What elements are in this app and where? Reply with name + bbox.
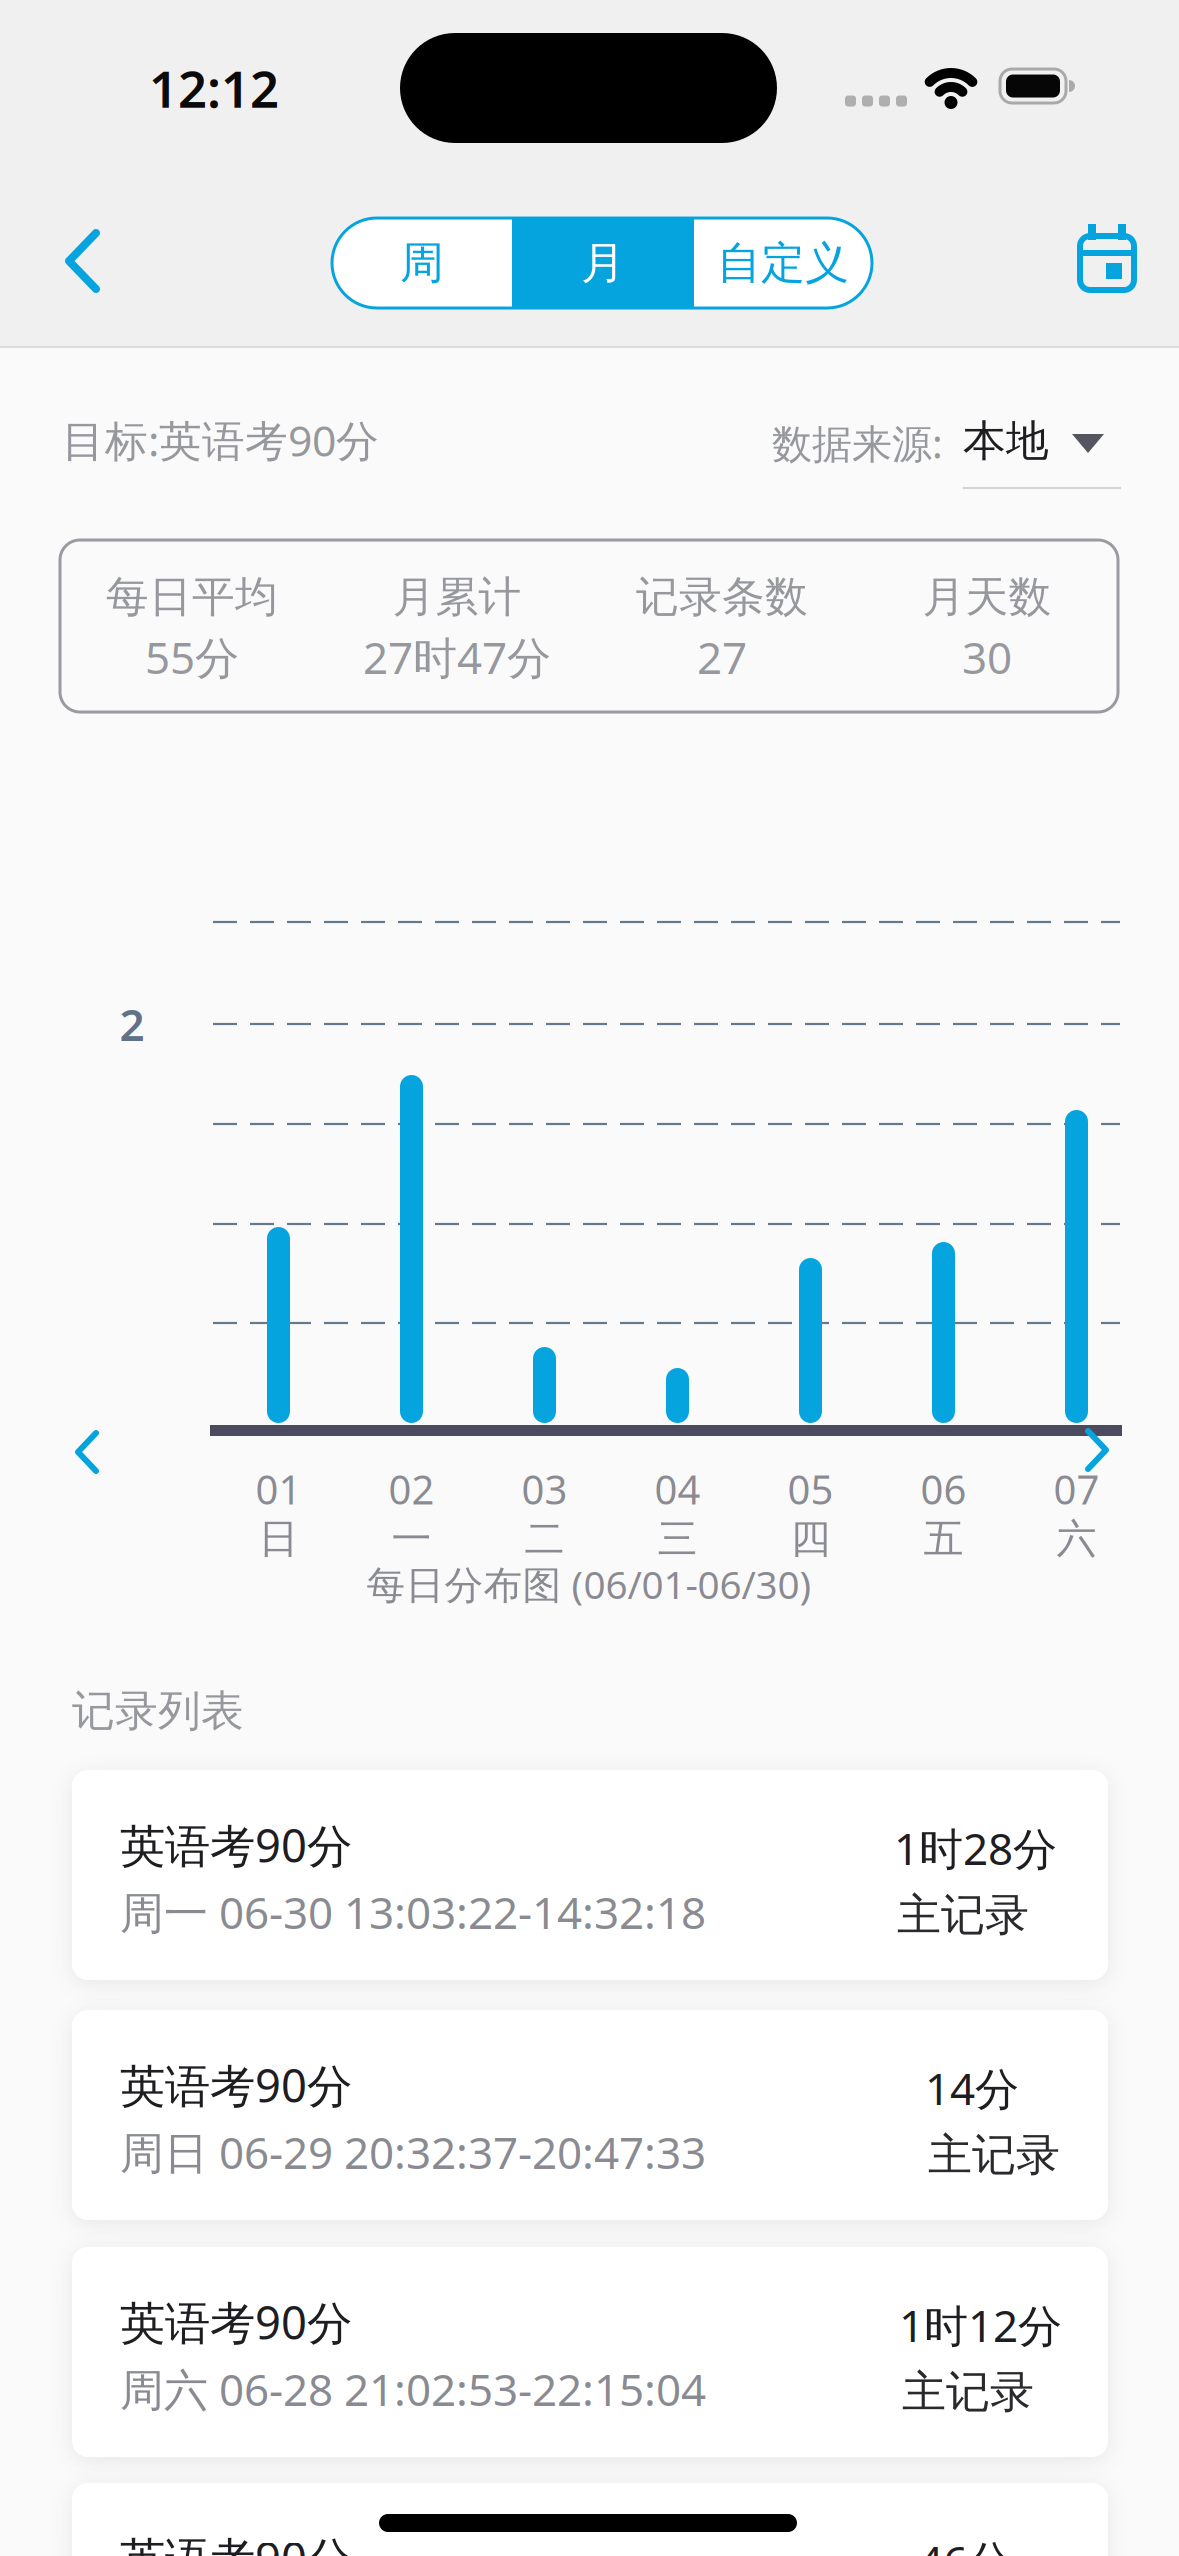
staticText: 二 <box>524 1514 564 1563</box>
staticText: 一 <box>391 1514 431 1563</box>
staticText: 主记录 <box>902 2365 1034 2419</box>
staticText: 1时28分 <box>894 1819 1057 1877</box>
staticText: 27 <box>697 628 747 686</box>
staticText: 五 <box>923 1514 963 1563</box>
staticText: 主记录 <box>897 1888 1029 1942</box>
button[interactable]: 英语考90分 <box>72 1770 1108 1980</box>
staticText: 06 <box>920 1462 966 1515</box>
button[interactable]: 数据来源: <box>750 400 1179 520</box>
staticText: 日 <box>258 1514 298 1563</box>
staticText: 1时12分 <box>899 2296 1062 2354</box>
staticText: 01 <box>255 1462 301 1515</box>
staticText: 周日 06-29 20:32:37-20:47:33 <box>120 2123 706 2181</box>
staticText: 07 <box>1053 1462 1099 1515</box>
staticText: 2 <box>119 995 144 1053</box>
button[interactable] <box>40 206 130 316</box>
staticText: 周六 06-28 21:02:53-22:15:04 <box>120 2360 706 2418</box>
staticText: 02 <box>388 1462 434 1515</box>
staticText: 主记录 <box>928 2128 1060 2182</box>
staticText: 27时47分 <box>363 628 551 686</box>
button[interactable] <box>0 0 1179 2556</box>
staticText: 月天数 <box>922 571 1051 623</box>
staticText: 12:12 <box>149 54 279 122</box>
staticText: 记录条数 <box>636 571 808 623</box>
staticText: 46分 <box>918 2532 1012 2556</box>
button[interactable]: 英语考90分 <box>72 2247 1108 2457</box>
staticText: 05 <box>787 1462 833 1515</box>
staticText: 55分 <box>145 628 239 686</box>
staticText: 月累计 <box>392 571 521 623</box>
staticText: 英语考90分 <box>120 1815 352 1875</box>
staticText: 自定义 <box>717 236 849 290</box>
button[interactable]: 英语考90分 <box>72 2010 1108 2220</box>
staticText: 英语考90分 <box>120 2055 352 2115</box>
staticText: 本地 <box>963 415 1049 467</box>
staticText: 英语考90分 <box>120 2528 352 2556</box>
button[interactable]: 英语考90分 <box>72 2483 1108 2556</box>
staticText: 四 <box>790 1514 830 1563</box>
button[interactable]: 月 <box>512 218 694 308</box>
button[interactable]: 自定义 <box>694 218 872 308</box>
button[interactable]: 周 <box>332 218 512 308</box>
staticText: 英语考90分 <box>120 2292 352 2352</box>
staticText: 周 <box>400 236 444 290</box>
staticText: 三 <box>657 1514 697 1563</box>
staticText: 04 <box>654 1462 700 1515</box>
staticText: 03 <box>521 1462 567 1515</box>
staticText: 月 <box>581 236 625 290</box>
staticText: 14分 <box>925 2059 1019 2117</box>
staticText: 每日平均 <box>106 571 278 623</box>
staticText: 30 <box>962 628 1012 686</box>
staticText: 目标:英语考90分 <box>62 412 379 468</box>
button[interactable] <box>56 1423 116 1481</box>
button[interactable] <box>1068 1421 1128 1479</box>
staticText: 记录列表 <box>72 1685 244 1737</box>
staticText: 每日分布图 (06/01-06/30) <box>366 1558 811 1610</box>
staticText: 周一 06-30 13:03:22-14:32:18 <box>120 1883 706 1941</box>
staticText: 数据来源: <box>772 416 943 469</box>
staticText: 六 <box>1056 1514 1096 1563</box>
